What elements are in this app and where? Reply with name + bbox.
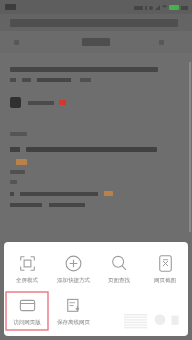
other: 添加快捷方式 (65, 255, 82, 272)
other: 全屏模式 (19, 255, 36, 272)
staticText: 页面查找 (108, 277, 130, 284)
button[interactable]: 添加快捷方式 (50, 250, 96, 288)
other: 网页截图 (157, 255, 174, 272)
button[interactable]: 页面查找 (96, 250, 142, 288)
other: 页面查找 (111, 255, 128, 272)
staticText: 访问网页版 (13, 319, 41, 326)
button[interactable]: 保存离线网页 (50, 292, 96, 330)
other: 访问网页版 (19, 297, 36, 314)
button[interactable]: 访问网页版 (6, 292, 48, 330)
staticText: 全屏模式 (16, 277, 38, 284)
other: 保存离线网页 (65, 297, 82, 314)
staticText: 网页截图 (154, 277, 176, 284)
staticText: 保存离线网页 (57, 319, 90, 326)
button[interactable]: 网页截图 (142, 250, 188, 288)
button[interactable]: 全屏模式 (4, 250, 50, 288)
staticText: 添加快捷方式 (57, 277, 90, 284)
